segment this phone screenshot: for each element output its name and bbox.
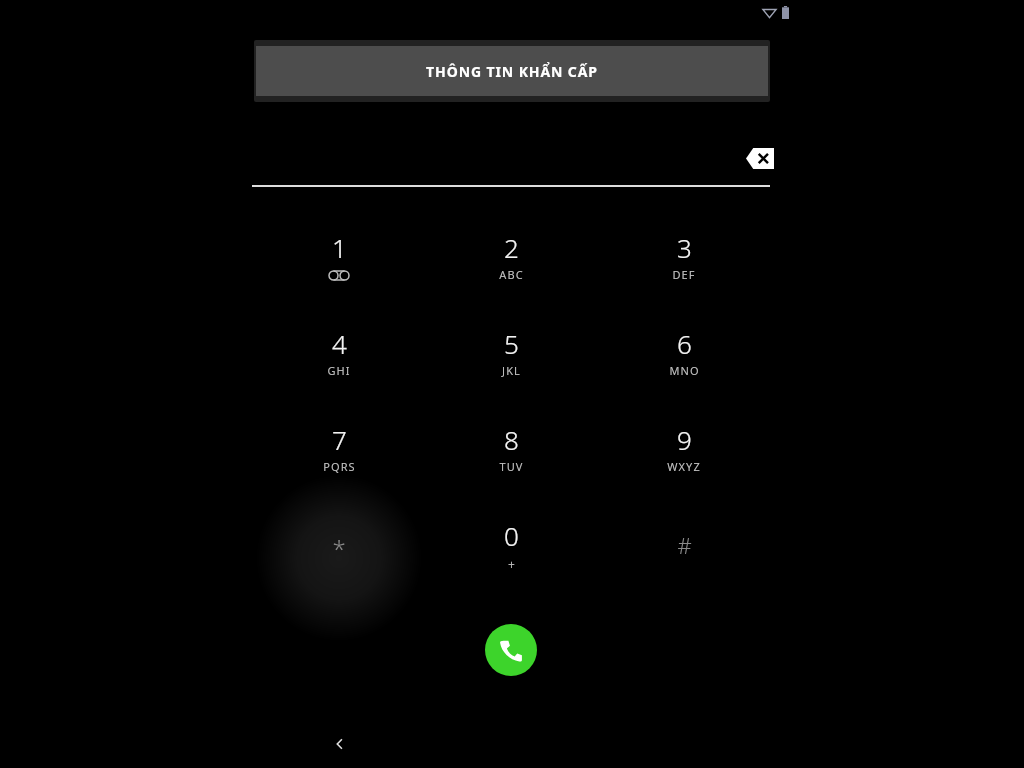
staticText: # <box>677 530 692 560</box>
button[interactable]: 0 <box>463 510 559 590</box>
button[interactable]: Call <box>485 624 537 676</box>
staticText: JKL <box>502 363 521 378</box>
staticText: ABC <box>499 267 524 282</box>
button[interactable]: 7 <box>291 414 387 494</box>
staticText: 5 <box>504 326 519 361</box>
staticText: 7 <box>332 422 347 457</box>
staticText: TUV <box>499 459 524 474</box>
button[interactable]: 9 <box>636 414 732 494</box>
staticText: PQRS <box>323 459 356 474</box>
button[interactable]: 5 <box>463 318 559 398</box>
button[interactable]: Delete <box>740 142 780 174</box>
button[interactable]: # <box>636 510 732 590</box>
staticText: 1 <box>332 230 347 265</box>
button[interactable]: 4 <box>291 318 387 398</box>
staticText: 9 <box>677 422 692 457</box>
staticText: DEF <box>672 267 696 282</box>
button[interactable]: Back <box>320 724 360 764</box>
staticText: MNO <box>669 363 700 378</box>
staticText: 2 <box>504 230 519 265</box>
button[interactable]: * <box>291 510 387 590</box>
staticText: 4 <box>332 326 347 361</box>
staticText: WXYZ <box>667 459 701 474</box>
button[interactable]: 1 <box>291 222 387 302</box>
staticText: + <box>508 556 515 572</box>
staticText: 8 <box>504 422 519 457</box>
button[interactable]: THÔNG TIN KHẨN CẤP <box>256 46 768 96</box>
staticText: 0 <box>504 518 519 553</box>
button[interactable]: 3 <box>636 222 732 302</box>
staticText: GHI <box>327 363 351 378</box>
button[interactable]: 6 <box>636 318 732 398</box>
button[interactable]: 2 <box>463 222 559 302</box>
staticText: 3 <box>677 230 692 265</box>
staticText: * <box>332 532 346 565</box>
staticText: 6 <box>677 326 692 361</box>
staticText: THÔNG TIN KHẨN CẤP <box>426 62 598 81</box>
button[interactable]: 8 <box>463 414 559 494</box>
